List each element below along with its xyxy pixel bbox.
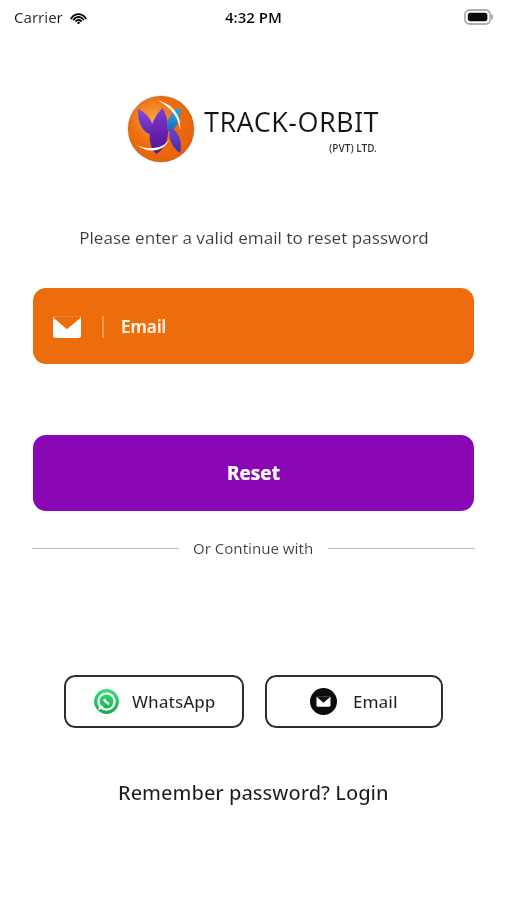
staticText: WhatsApp xyxy=(132,690,216,713)
staticText: Remember password? Login xyxy=(118,779,389,806)
staticText: 4:32 PM xyxy=(225,7,282,27)
staticText: Email xyxy=(353,690,398,713)
staticText: Please enter a valid email to reset pass… xyxy=(79,226,429,249)
button[interactable]: Reset xyxy=(33,435,474,511)
button[interactable]: Email xyxy=(33,288,474,364)
staticText: Reset xyxy=(227,460,280,486)
button[interactable]: Email xyxy=(265,675,443,728)
staticText: (PVT) LTD. xyxy=(329,141,377,155)
staticText: Or Continue with xyxy=(193,538,314,558)
button[interactable]: Remember password? Login xyxy=(106,775,401,810)
staticText: TRACK-ORBIT xyxy=(204,103,379,140)
button[interactable]: WhatsApp xyxy=(64,675,244,728)
staticText: Email xyxy=(121,315,167,338)
staticText: Carrier xyxy=(14,7,63,27)
